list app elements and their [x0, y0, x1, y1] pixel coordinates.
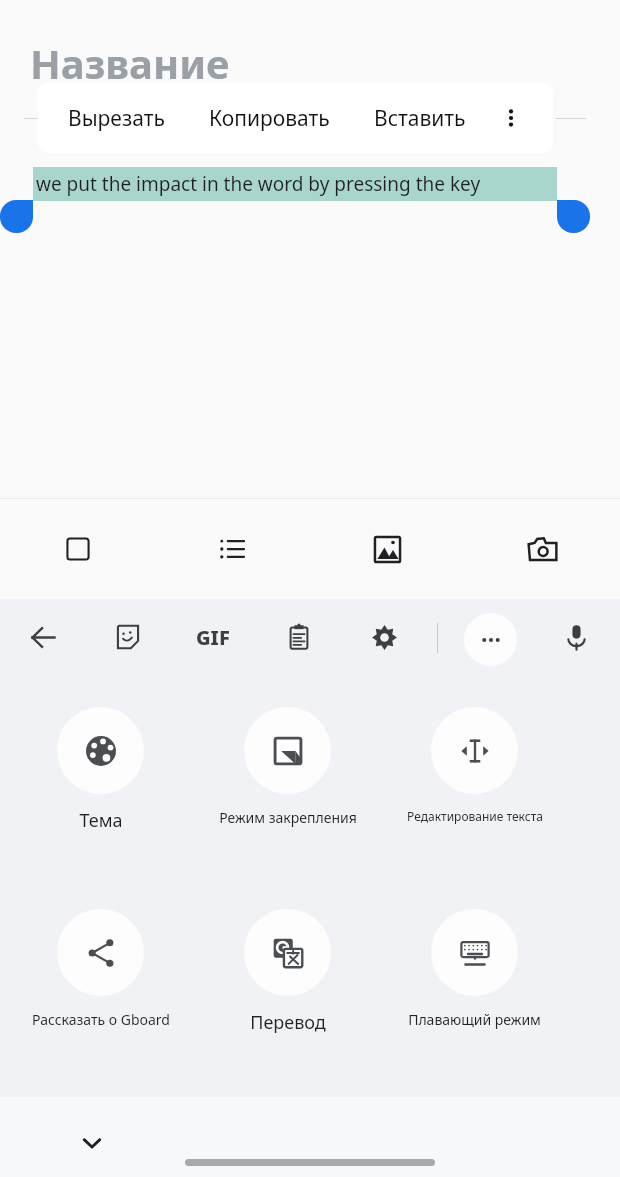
button[interactable]: Плавающий режим — [381, 909, 568, 1029]
button[interactable]: Back — [19, 613, 67, 661]
button[interactable]: Режим закрепления — [194, 707, 381, 827]
button[interactable]: Hide keyboard — [68, 1119, 116, 1167]
button[interactable]: Вставить — [366, 94, 474, 143]
staticText: Плавающий режим — [408, 1010, 541, 1029]
button[interactable]: Selection start handle — [0, 200, 33, 233]
button[interactable]: Settings — [360, 613, 408, 661]
button[interactable]: Копировать — [201, 94, 338, 143]
button[interactable]: Вырезать — [60, 94, 173, 143]
button[interactable]: Checklist — [52, 523, 104, 575]
staticText: Редактирование текста — [407, 808, 543, 824]
staticText: Тема — [79, 808, 123, 833]
staticText: Рассказать о Gboard — [32, 1010, 170, 1029]
button[interactable]: Bulleted list — [206, 523, 258, 575]
button[interactable]: Camera — [516, 523, 568, 575]
staticText: Вырезать — [68, 104, 165, 133]
staticText: Копировать — [209, 104, 330, 133]
button[interactable]: Рассказать о Gboard — [7, 909, 194, 1029]
button[interactable]: Перевод — [194, 909, 381, 1035]
button[interactable]: Редактирование текста — [381, 707, 568, 824]
button[interactable]: More options — [491, 98, 531, 138]
staticText: we put the impact in the word by pressin… — [36, 171, 481, 197]
staticText: GIF — [196, 624, 230, 651]
staticText: Перевод — [250, 1010, 326, 1035]
button[interactable]: Stickers — [104, 613, 152, 661]
button[interactable]: GIF — [189, 613, 237, 661]
button[interactable]: Voice input — [552, 613, 600, 661]
button[interactable]: Тема — [7, 707, 194, 833]
staticText: Режим закрепления — [219, 808, 357, 827]
button[interactable]: Insert image — [361, 523, 413, 575]
button[interactable]: Clipboard — [275, 613, 323, 661]
staticText: Вставить — [374, 104, 466, 133]
button[interactable]: Selection end handle — [557, 200, 590, 233]
staticText: Название — [30, 36, 230, 90]
button[interactable]: More keyboard options — [464, 613, 517, 666]
